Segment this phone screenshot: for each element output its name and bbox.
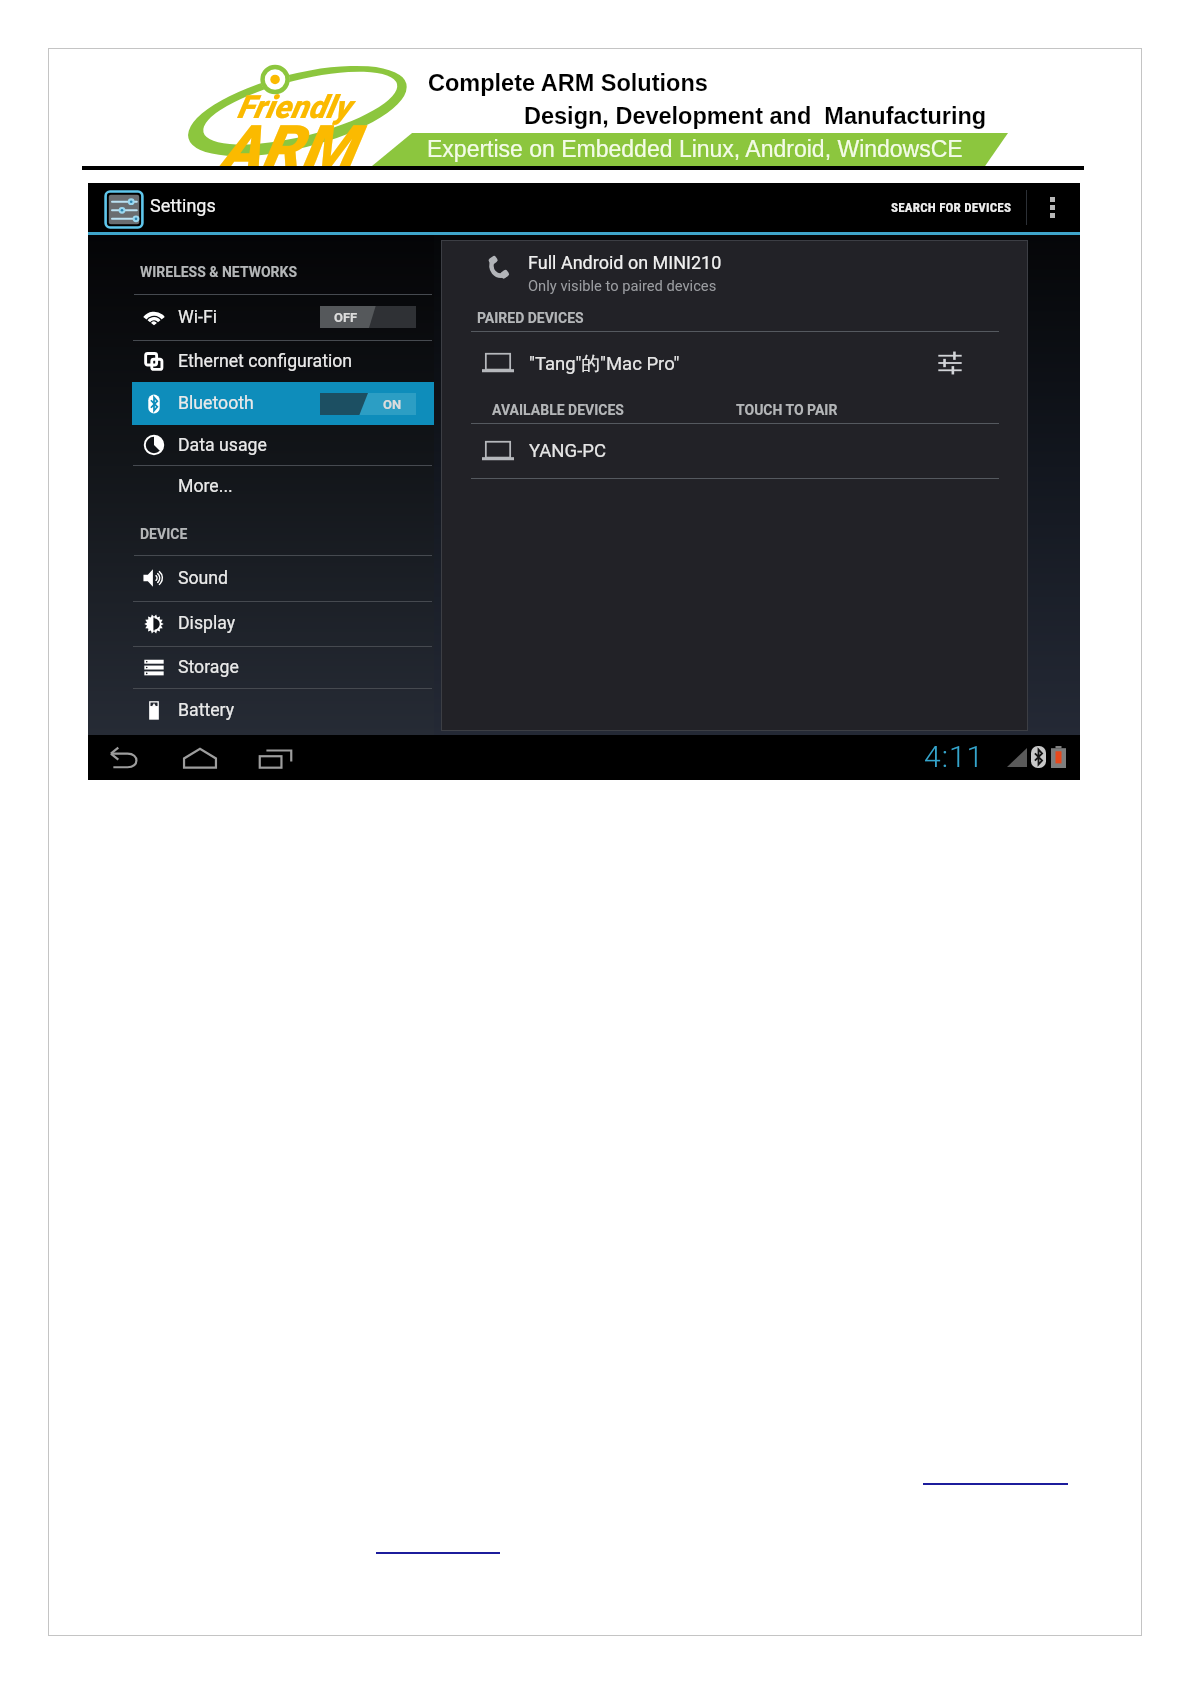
- button[interactable]: Sound: [132, 555, 434, 601]
- staticText: DEVICE: [140, 526, 188, 542]
- staticText: Data usage: [178, 435, 267, 456]
- button[interactable]: Wi-Fi: [132, 294, 434, 340]
- staticText: Complete ARM Solutions: [428, 70, 708, 96]
- button[interactable]: Ethernet configuration: [132, 340, 434, 382]
- button[interactable]: Full Android on MINI210: [441, 240, 1028, 304]
- button[interactable]: Recent apps: [247, 735, 303, 780]
- staticText: More...: [178, 476, 233, 497]
- staticText: Storage: [178, 657, 239, 678]
- staticText: YANG-PC: [529, 440, 606, 462]
- button[interactable]: Data usage: [132, 425, 434, 465]
- staticText: Display: [178, 613, 236, 634]
- button[interactable]: Settings: [104, 190, 144, 229]
- staticText: Settings: [150, 195, 216, 216]
- staticText: "Tang"的"Mac Pro": [529, 352, 680, 375]
- staticText: TOUCH TO PAIR: [736, 402, 838, 418]
- staticText: SEARCH FOR DEVICES: [891, 200, 1012, 215]
- button[interactable]: Back: [96, 735, 152, 780]
- staticText: Expertise on Embedded Linux, Android, Wi…: [427, 136, 963, 162]
- button[interactable]: Display: [132, 601, 434, 646]
- staticText: Bluetooth: [178, 393, 254, 414]
- staticText: Wi-Fi: [178, 307, 217, 328]
- button[interactable]: Storage: [132, 646, 434, 688]
- button[interactable]: OFF: [320, 306, 416, 328]
- button[interactable]: Home: [172, 735, 228, 780]
- button[interactable]: YANG-PC: [441, 424, 1028, 478]
- button[interactable]: More...: [132, 465, 434, 508]
- staticText: Ethernet configuration: [178, 351, 353, 372]
- staticText: Sound: [178, 568, 229, 589]
- staticText: WIRELESS & NETWORKS: [140, 264, 297, 280]
- staticText: OFF: [334, 310, 358, 325]
- button[interactable]: SEARCH FOR DEVICES: [883, 183, 1020, 232]
- staticText: Battery: [178, 700, 235, 721]
- staticText: 4:11: [924, 739, 985, 774]
- staticText: Design, Development and Manufacturing: [524, 103, 987, 129]
- button[interactable]: "Tang"的"Mac Pro": [441, 332, 1028, 394]
- staticText: AVAILABLE DEVICES: [492, 402, 624, 418]
- button[interactable]: Bluetooth: [132, 382, 434, 425]
- button[interactable]: Device settings: [925, 332, 975, 394]
- staticText: Full Android on MINI210: [528, 252, 722, 273]
- staticText: Friendly: [237, 88, 351, 126]
- staticText: Only visible to paired devices: [528, 277, 717, 294]
- staticText: ON: [383, 397, 402, 412]
- staticText: ARM: [220, 112, 356, 186]
- staticText: PAIRED DEVICES: [477, 310, 584, 326]
- button[interactable]: Battery: [132, 688, 434, 732]
- button[interactable]: ON: [320, 393, 416, 415]
- button[interactable]: More options: [1030, 183, 1074, 232]
